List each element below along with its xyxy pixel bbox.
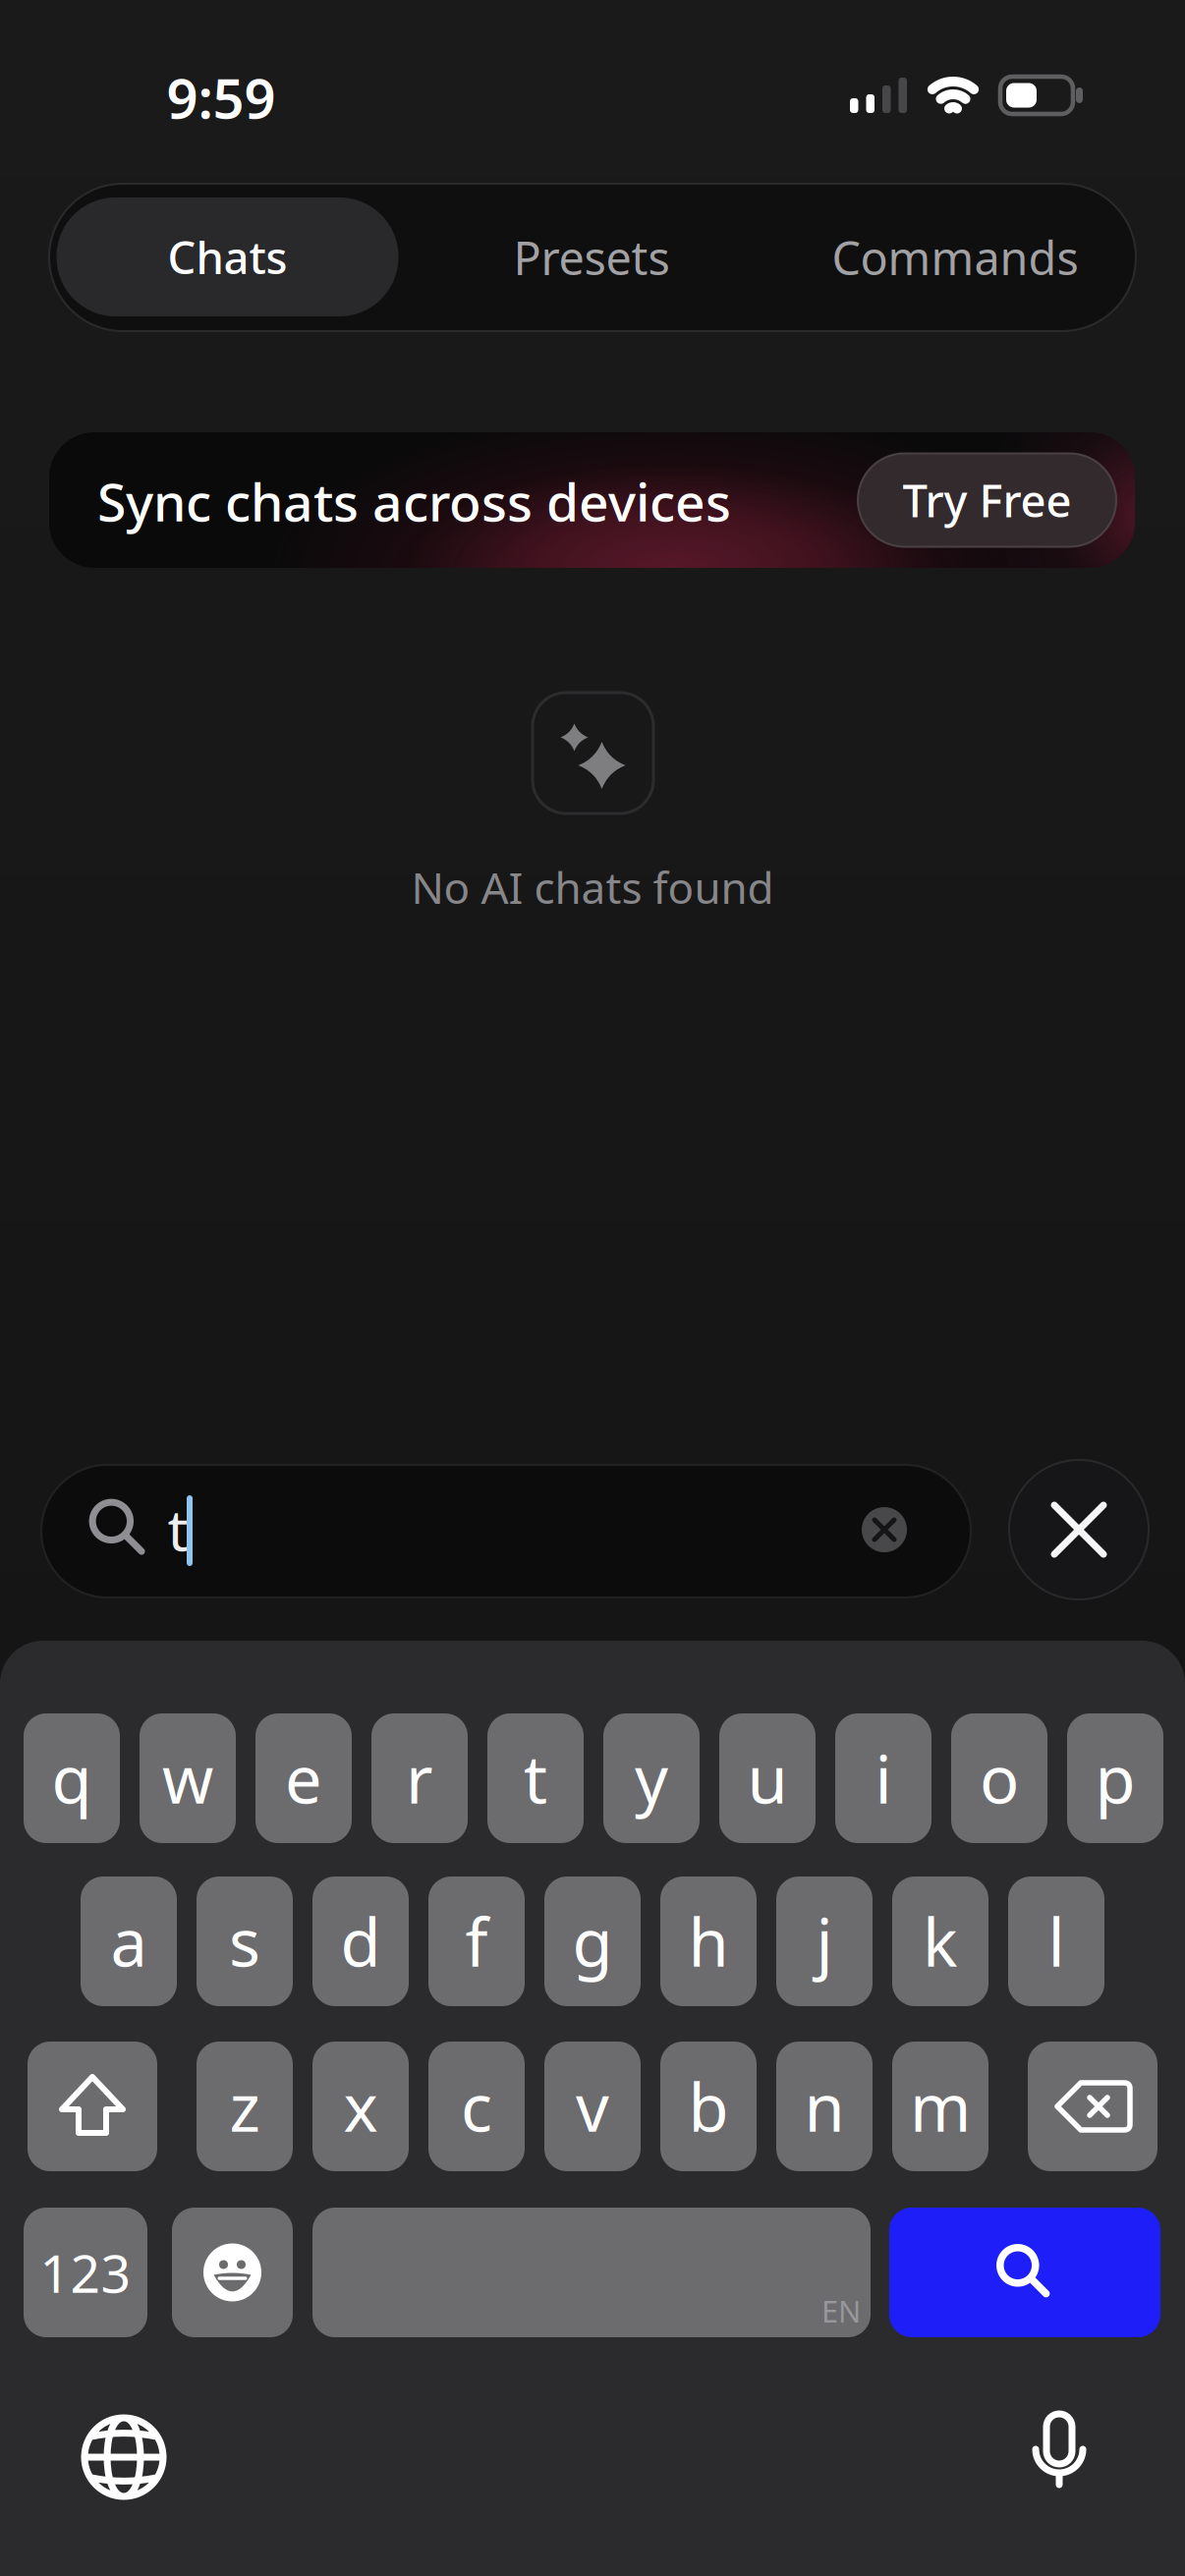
staticText: q xyxy=(52,1735,92,1822)
staticText: o xyxy=(980,1735,1019,1822)
staticText: 9:59 xyxy=(167,61,276,134)
staticText: p xyxy=(1095,1735,1135,1822)
button[interactable]: Delete xyxy=(1028,2042,1157,2171)
button[interactable]: g xyxy=(544,1876,641,2006)
button[interactable]: t xyxy=(487,1713,584,1843)
button[interactable]: Search xyxy=(41,1465,971,1597)
button[interactable]: Presets xyxy=(429,189,754,326)
button[interactable]: s xyxy=(197,1876,293,2006)
button[interactable]: Commands xyxy=(778,189,1132,326)
staticText: Sync chats across devices xyxy=(97,466,731,536)
staticText: n xyxy=(804,2063,845,2150)
staticText: b xyxy=(688,2063,729,2150)
button[interactable]: m xyxy=(892,2042,988,2171)
button[interactable]: k xyxy=(892,1876,988,2006)
staticText: a xyxy=(111,1898,147,1985)
button[interactable]: Emoji xyxy=(172,2208,293,2337)
button[interactable]: i xyxy=(835,1713,931,1843)
button[interactable]: u xyxy=(719,1713,816,1843)
button[interactable]: p xyxy=(1067,1713,1163,1843)
staticText: z xyxy=(229,2063,260,2150)
staticText: l xyxy=(1048,1898,1065,1985)
staticText: y xyxy=(635,1735,668,1822)
button[interactable]: z xyxy=(197,2042,293,2171)
staticText: EN xyxy=(821,2291,861,2331)
button[interactable]: n xyxy=(776,2042,873,2171)
staticText: m xyxy=(910,2063,971,2150)
button[interactable]: f xyxy=(428,1876,525,2006)
staticText: h xyxy=(688,1898,729,1985)
button[interactable]: e xyxy=(255,1713,352,1843)
button[interactable]: x xyxy=(312,2042,409,2171)
button[interactable]: Space xyxy=(312,2208,871,2337)
button[interactable]: j xyxy=(776,1876,873,2006)
button[interactable]: h xyxy=(660,1876,757,2006)
button[interactable]: Chats xyxy=(56,197,398,316)
button[interactable]: c xyxy=(428,2042,525,2171)
staticText: s xyxy=(229,1898,260,1985)
button[interactable]: l xyxy=(1008,1876,1104,2006)
staticText: d xyxy=(340,1898,381,1985)
button[interactable]: Clear text xyxy=(862,1507,907,1552)
staticText: f xyxy=(465,1898,488,1985)
staticText: x xyxy=(343,2063,378,2150)
button[interactable]: Dictation xyxy=(1017,2408,1101,2506)
staticText: t xyxy=(524,1735,547,1822)
button[interactable]: o xyxy=(951,1713,1047,1843)
button[interactable]: 123 xyxy=(24,2208,147,2337)
staticText: No AI chats found xyxy=(411,858,774,916)
button[interactable]: Search xyxy=(889,2208,1160,2337)
staticText: u xyxy=(747,1735,788,1822)
staticText: e xyxy=(285,1735,322,1822)
staticText: c xyxy=(461,2063,492,2150)
button[interactable]: q xyxy=(24,1713,120,1843)
staticText: 123 xyxy=(40,2238,131,2307)
staticText: g xyxy=(572,1898,613,1985)
staticText: j xyxy=(816,1898,833,1985)
staticText: v xyxy=(576,2063,609,2150)
staticText: k xyxy=(923,1898,958,1985)
button[interactable]: Close search xyxy=(1009,1460,1149,1599)
button[interactable]: b xyxy=(660,2042,757,2171)
button[interactable]: Shift xyxy=(28,2042,157,2171)
staticText: Try Free xyxy=(903,470,1072,530)
staticText: r xyxy=(406,1735,433,1822)
staticText: Chats xyxy=(168,227,287,286)
staticText: Commands xyxy=(832,227,1078,288)
staticText: w xyxy=(162,1735,213,1822)
staticText: t xyxy=(168,1490,188,1567)
button[interactable]: r xyxy=(371,1713,468,1843)
button[interactable]: Next keyboard xyxy=(85,2418,163,2496)
button[interactable]: a xyxy=(81,1876,177,2006)
staticText: Presets xyxy=(513,227,670,288)
button[interactable]: y xyxy=(603,1713,700,1843)
button[interactable]: v xyxy=(544,2042,641,2171)
button[interactable]: w xyxy=(140,1713,236,1843)
button[interactable]: d xyxy=(312,1876,409,2006)
staticText: i xyxy=(875,1735,892,1822)
button[interactable]: Try Free xyxy=(858,453,1116,547)
